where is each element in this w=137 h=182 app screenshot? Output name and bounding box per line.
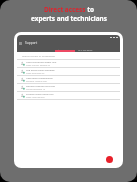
button[interactable]: Add [106,156,113,163]
staticText: experts and technicians [31,14,107,23]
button[interactable]: New tablet configuration [17,76,120,84]
staticText: New tablet configuration [26,77,53,80]
staticText: Pending Waiting user [26,80,48,83]
staticText: MY TICKETS [58,48,72,51]
staticText: ALL TICKETS [78,48,93,51]
button[interactable]: Outlook calendar sync fails [17,84,120,92]
staticText: Search tickets or knowledge [22,54,55,57]
staticText: Outlook calendar sync fails [26,85,55,88]
staticText: Wifi access point dropping [26,69,55,72]
staticText: Scanner driver install Win [26,93,54,96]
button[interactable]: Laser printer jam paper unit [17,60,120,68]
staticText: Direct access to [44,5,94,14]
button[interactable]: Scanner driver install Win [17,92,120,100]
staticText: Laser printer jam paper unit [26,61,57,64]
button[interactable]: Wifi access point dropping [17,68,120,76]
staticText: Support [25,41,38,45]
button[interactable]: ALL TICKETS [75,47,95,52]
staticText: Open New request [26,96,45,99]
staticText: Closed Resolved 1d [26,88,46,91]
button[interactable]: MY TICKETS [55,47,75,52]
staticText: Open Priority Replied 2h [26,64,51,67]
staticText: Open Escalated 5h [26,72,45,75]
